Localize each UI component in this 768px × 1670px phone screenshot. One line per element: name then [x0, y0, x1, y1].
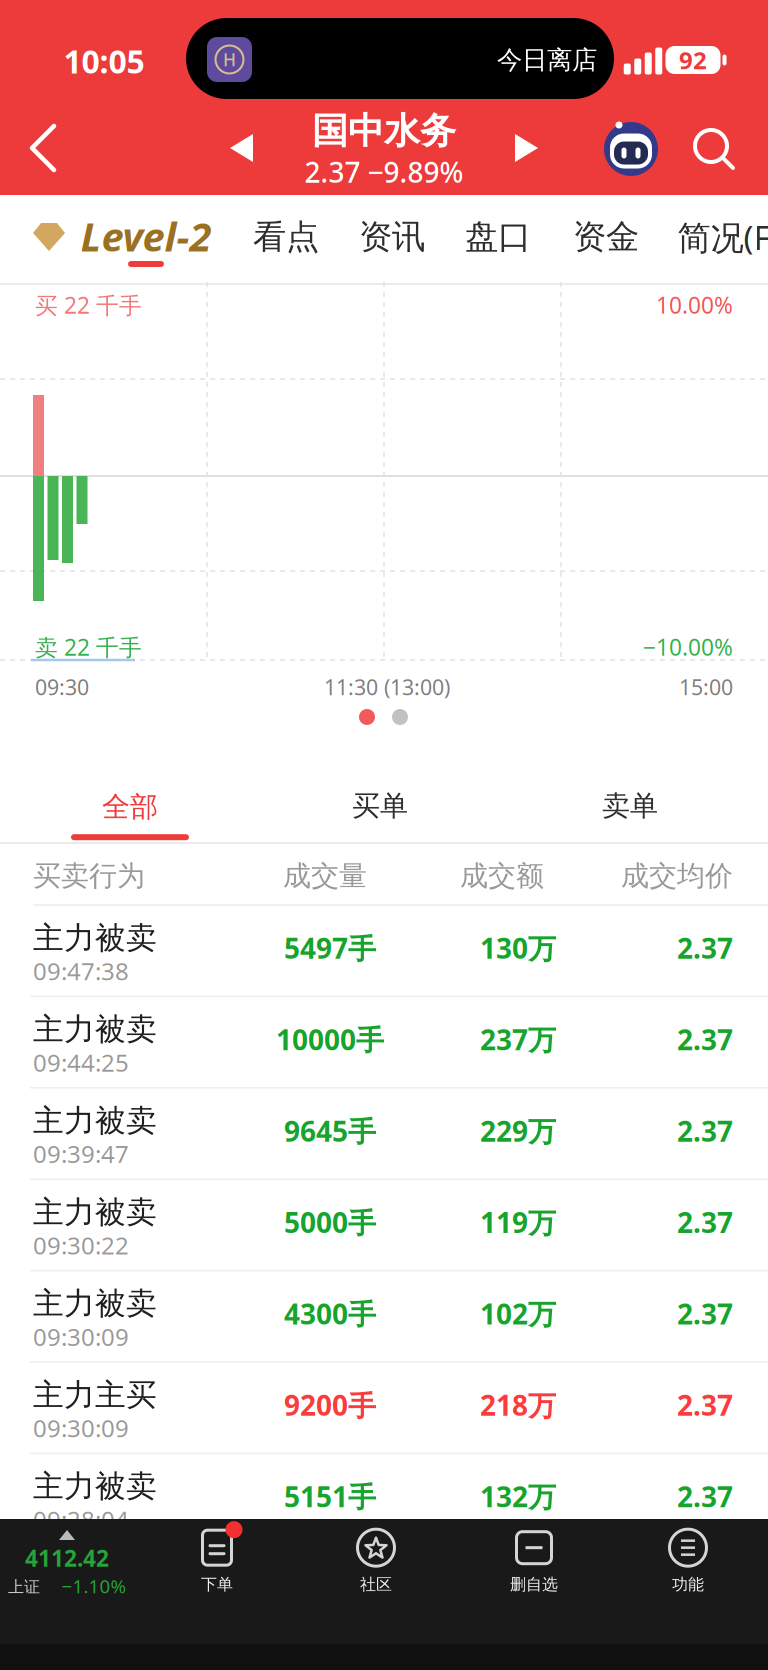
staticText: 15:00	[679, 673, 733, 701]
staticText: 国中水务	[312, 109, 456, 153]
staticText: 主力被卖	[33, 1468, 157, 1505]
staticText: 09:30:22	[33, 1229, 129, 1261]
staticText: 主力被卖	[33, 919, 157, 957]
staticText: 10:05	[63, 40, 144, 82]
staticText: 92	[679, 44, 707, 76]
staticText: 218万	[480, 1386, 556, 1424]
staticText: 09:44:25	[33, 1046, 129, 1078]
button[interactable]: 卖单	[530, 771, 730, 841]
staticText: 资金	[573, 216, 639, 257]
staticText: H	[223, 48, 236, 71]
staticText: 130万	[480, 929, 556, 967]
button[interactable]: Level-2	[17, 195, 207, 285]
staticText: 4300手	[284, 1295, 376, 1332]
staticText: 9200手	[284, 1386, 376, 1424]
staticText: 9645手	[284, 1112, 376, 1149]
staticText: 买单	[352, 789, 408, 823]
staticText: 主力被卖	[33, 1011, 157, 1048]
staticText: 主力被卖	[33, 1285, 157, 1322]
button[interactable]: Assistant	[604, 122, 658, 176]
staticText: −10.00%	[643, 632, 733, 662]
staticText: 09:30	[35, 673, 89, 701]
button[interactable]: 简况(F10)	[668, 192, 768, 282]
staticText: 09:30:09	[33, 1412, 129, 1444]
staticText: 5000手	[284, 1204, 376, 1241]
staticText: 下单	[201, 1575, 233, 1594]
button[interactable]: 盘口	[446, 192, 550, 282]
staticText: 上证	[8, 1577, 40, 1597]
staticText: 主力被卖	[33, 1193, 157, 1231]
staticText: 成交量	[283, 859, 367, 893]
staticText: 全部	[102, 790, 158, 824]
button[interactable]: 功能	[618, 1520, 758, 1602]
staticText: 2.37	[677, 1478, 733, 1515]
button[interactable]: 资讯	[340, 192, 444, 282]
staticText: 09:47:38	[33, 955, 129, 987]
staticText: 10.00%	[656, 290, 733, 320]
staticText: 2.37	[677, 1021, 733, 1058]
staticText: 10000手	[276, 1021, 384, 1058]
staticText: 2.37	[677, 1112, 733, 1149]
staticText: 主力主买	[33, 1376, 157, 1414]
staticText: 功能	[672, 1575, 704, 1594]
staticText: 2.37	[677, 1204, 733, 1241]
staticText: 成交均价	[621, 859, 733, 893]
staticText: 成交额	[460, 859, 544, 893]
staticText: 2.37	[677, 1295, 733, 1332]
button[interactable]: Next stock	[515, 134, 539, 162]
button[interactable]: Previous stock	[229, 134, 253, 162]
button[interactable]: 买单	[280, 771, 480, 841]
staticText: 简况(F10)	[677, 215, 768, 259]
staticText: 社区	[360, 1575, 392, 1594]
button[interactable]: 资金	[554, 192, 658, 282]
staticText: 119万	[480, 1204, 556, 1241]
staticText: 5497手	[284, 929, 376, 967]
staticText: −1.10%	[61, 1574, 126, 1598]
staticText: 2.37	[677, 929, 733, 967]
staticText: 09:28:04	[33, 1503, 129, 1535]
button[interactable]: 删自选	[464, 1520, 604, 1602]
staticText: 09:39:47	[33, 1138, 129, 1170]
button[interactable]: Back	[20, 118, 70, 178]
staticText: 资讯	[359, 216, 425, 257]
button[interactable]: Search	[690, 126, 736, 172]
button[interactable]: 全部	[71, 790, 189, 840]
staticText: 卖单	[602, 789, 658, 823]
button[interactable]: 4112.42	[0, 1518, 145, 1613]
staticText: 229万	[480, 1112, 556, 1149]
button[interactable]: 下单	[147, 1520, 287, 1602]
staticText: 4112.42	[25, 1543, 109, 1573]
staticText: 102万	[480, 1295, 556, 1332]
button[interactable]: 看点	[234, 192, 338, 282]
staticText: 132万	[480, 1478, 556, 1515]
staticText: 11:30 (13:00)	[324, 673, 450, 701]
staticText: 删自选	[510, 1575, 558, 1594]
staticText: 盘口	[465, 216, 531, 257]
staticText: 2.37	[677, 1386, 733, 1424]
staticText: 237万	[480, 1021, 556, 1058]
staticText: 今日离店	[497, 44, 597, 75]
staticText: 买卖行为	[33, 859, 145, 893]
staticText: 买 22 千手	[35, 290, 142, 320]
staticText: 5151手	[284, 1478, 376, 1515]
staticText: Level-2	[80, 209, 211, 262]
staticText: 09:30:09	[33, 1321, 129, 1353]
staticText: 看点	[253, 216, 319, 257]
staticText: 2.37 −9.89%	[304, 153, 463, 191]
staticText: 卖 22 千手	[35, 632, 142, 662]
button[interactable]: 社区	[306, 1520, 446, 1602]
staticText: 主力被卖	[33, 1102, 157, 1140]
